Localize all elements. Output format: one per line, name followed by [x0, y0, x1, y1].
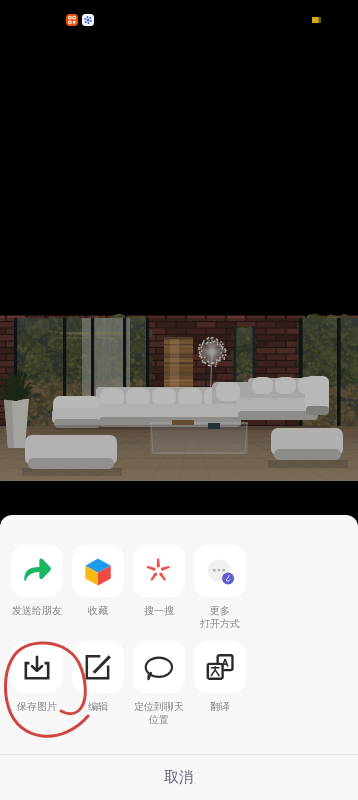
- staticText: 收藏: [72, 604, 124, 617]
- button[interactable]: 搜一搜: [133, 545, 185, 617]
- button[interactable]: 取消: [0, 755, 358, 800]
- button[interactable]: 更多打开方式: [194, 545, 246, 630]
- button[interactable]: 发送给朋友: [11, 545, 63, 617]
- button[interactable]: 保存图片: [11, 641, 63, 713]
- button[interactable]: 翻译: [194, 641, 246, 713]
- staticText: 取消: [164, 768, 194, 787]
- button[interactable]: 编辑: [72, 641, 124, 713]
- staticText: 发送给朋友: [11, 604, 63, 617]
- staticText: 搜一搜: [133, 604, 185, 617]
- staticText: 翻译: [194, 700, 246, 713]
- button[interactable]: Photo: [0, 318, 358, 481]
- staticText: 定位到聊天 位置: [133, 700, 185, 726]
- staticText: 保存图片: [11, 700, 63, 713]
- staticText: 编辑: [72, 700, 124, 713]
- staticText: 更多 打开方式: [194, 604, 246, 630]
- button[interactable]: 定位到聊天位置: [133, 641, 185, 726]
- button[interactable]: 收藏: [72, 545, 124, 617]
